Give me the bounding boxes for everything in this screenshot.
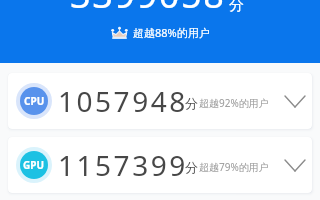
- staticText: 1057948: [58, 82, 188, 120]
- staticText: 分: [229, 0, 244, 15]
- staticText: CPU: [24, 94, 45, 108]
- staticText: GPU: [23, 158, 45, 172]
- button[interactable]: Expand: [283, 153, 307, 177]
- button[interactable]: GPU: [8, 137, 312, 193]
- staticText: 超越79%的用户: [199, 160, 269, 174]
- button[interactable]: CPU: [8, 73, 312, 129]
- staticText: 超越88%的用户: [133, 25, 210, 40]
- staticText: 分: [185, 159, 198, 175]
- staticText: 1157399: [58, 146, 188, 184]
- button[interactable]: Expand: [283, 89, 307, 113]
- staticText: 超越92%的用户: [199, 96, 269, 110]
- staticText: 分: [185, 95, 198, 111]
- staticText: 3399058: [70, 0, 226, 19]
